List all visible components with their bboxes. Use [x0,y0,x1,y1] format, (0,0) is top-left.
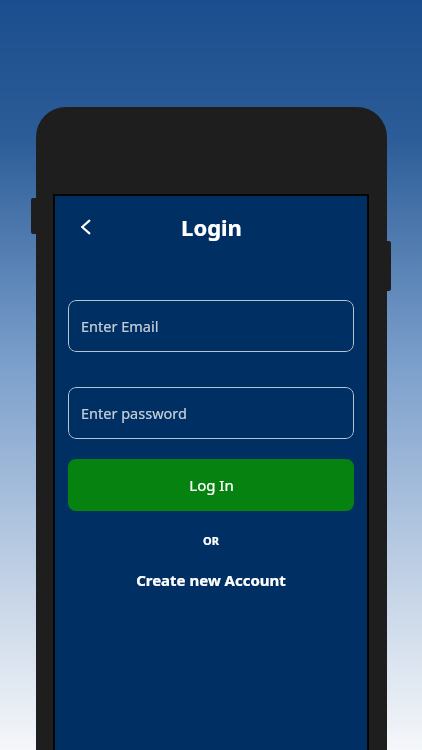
staticText: Create new Account [136,570,286,590]
button[interactable]: Enter password [68,387,354,439]
button[interactable]: Back [65,205,109,249]
staticText: Enter Email [81,316,159,336]
staticText: OR [203,533,219,548]
button[interactable]: Enter Email [68,300,354,352]
staticText: Login [181,212,242,242]
staticText: Enter password [81,403,187,423]
button[interactable]: Log In [68,459,354,511]
staticText: Log In [189,475,234,495]
button[interactable]: Create new Account [68,566,354,594]
